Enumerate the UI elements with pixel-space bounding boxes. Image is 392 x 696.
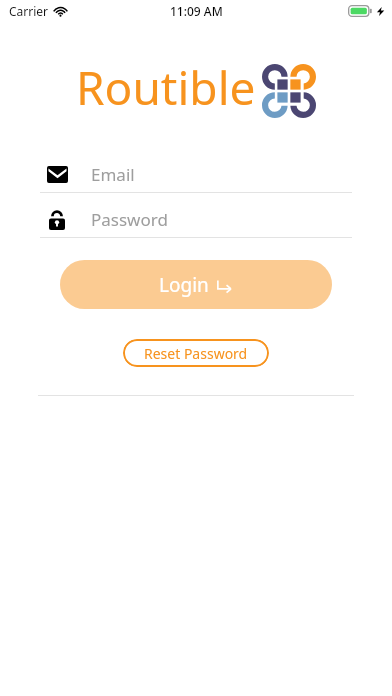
staticText: Password xyxy=(91,208,168,231)
other: Email xyxy=(40,166,74,183)
button[interactable]: Login xyxy=(60,260,332,309)
staticText: 11:09 AM xyxy=(170,3,223,19)
staticText: Carrier xyxy=(9,3,49,19)
staticText: Email xyxy=(91,163,135,186)
staticText: Reset Password xyxy=(144,344,248,363)
other: Password xyxy=(40,210,74,230)
staticText: Routible xyxy=(76,56,256,119)
button[interactable]: Email xyxy=(40,157,352,193)
staticText: Login xyxy=(159,272,209,298)
button[interactable]: Reset Password xyxy=(123,339,269,367)
button[interactable]: Password xyxy=(40,202,352,238)
